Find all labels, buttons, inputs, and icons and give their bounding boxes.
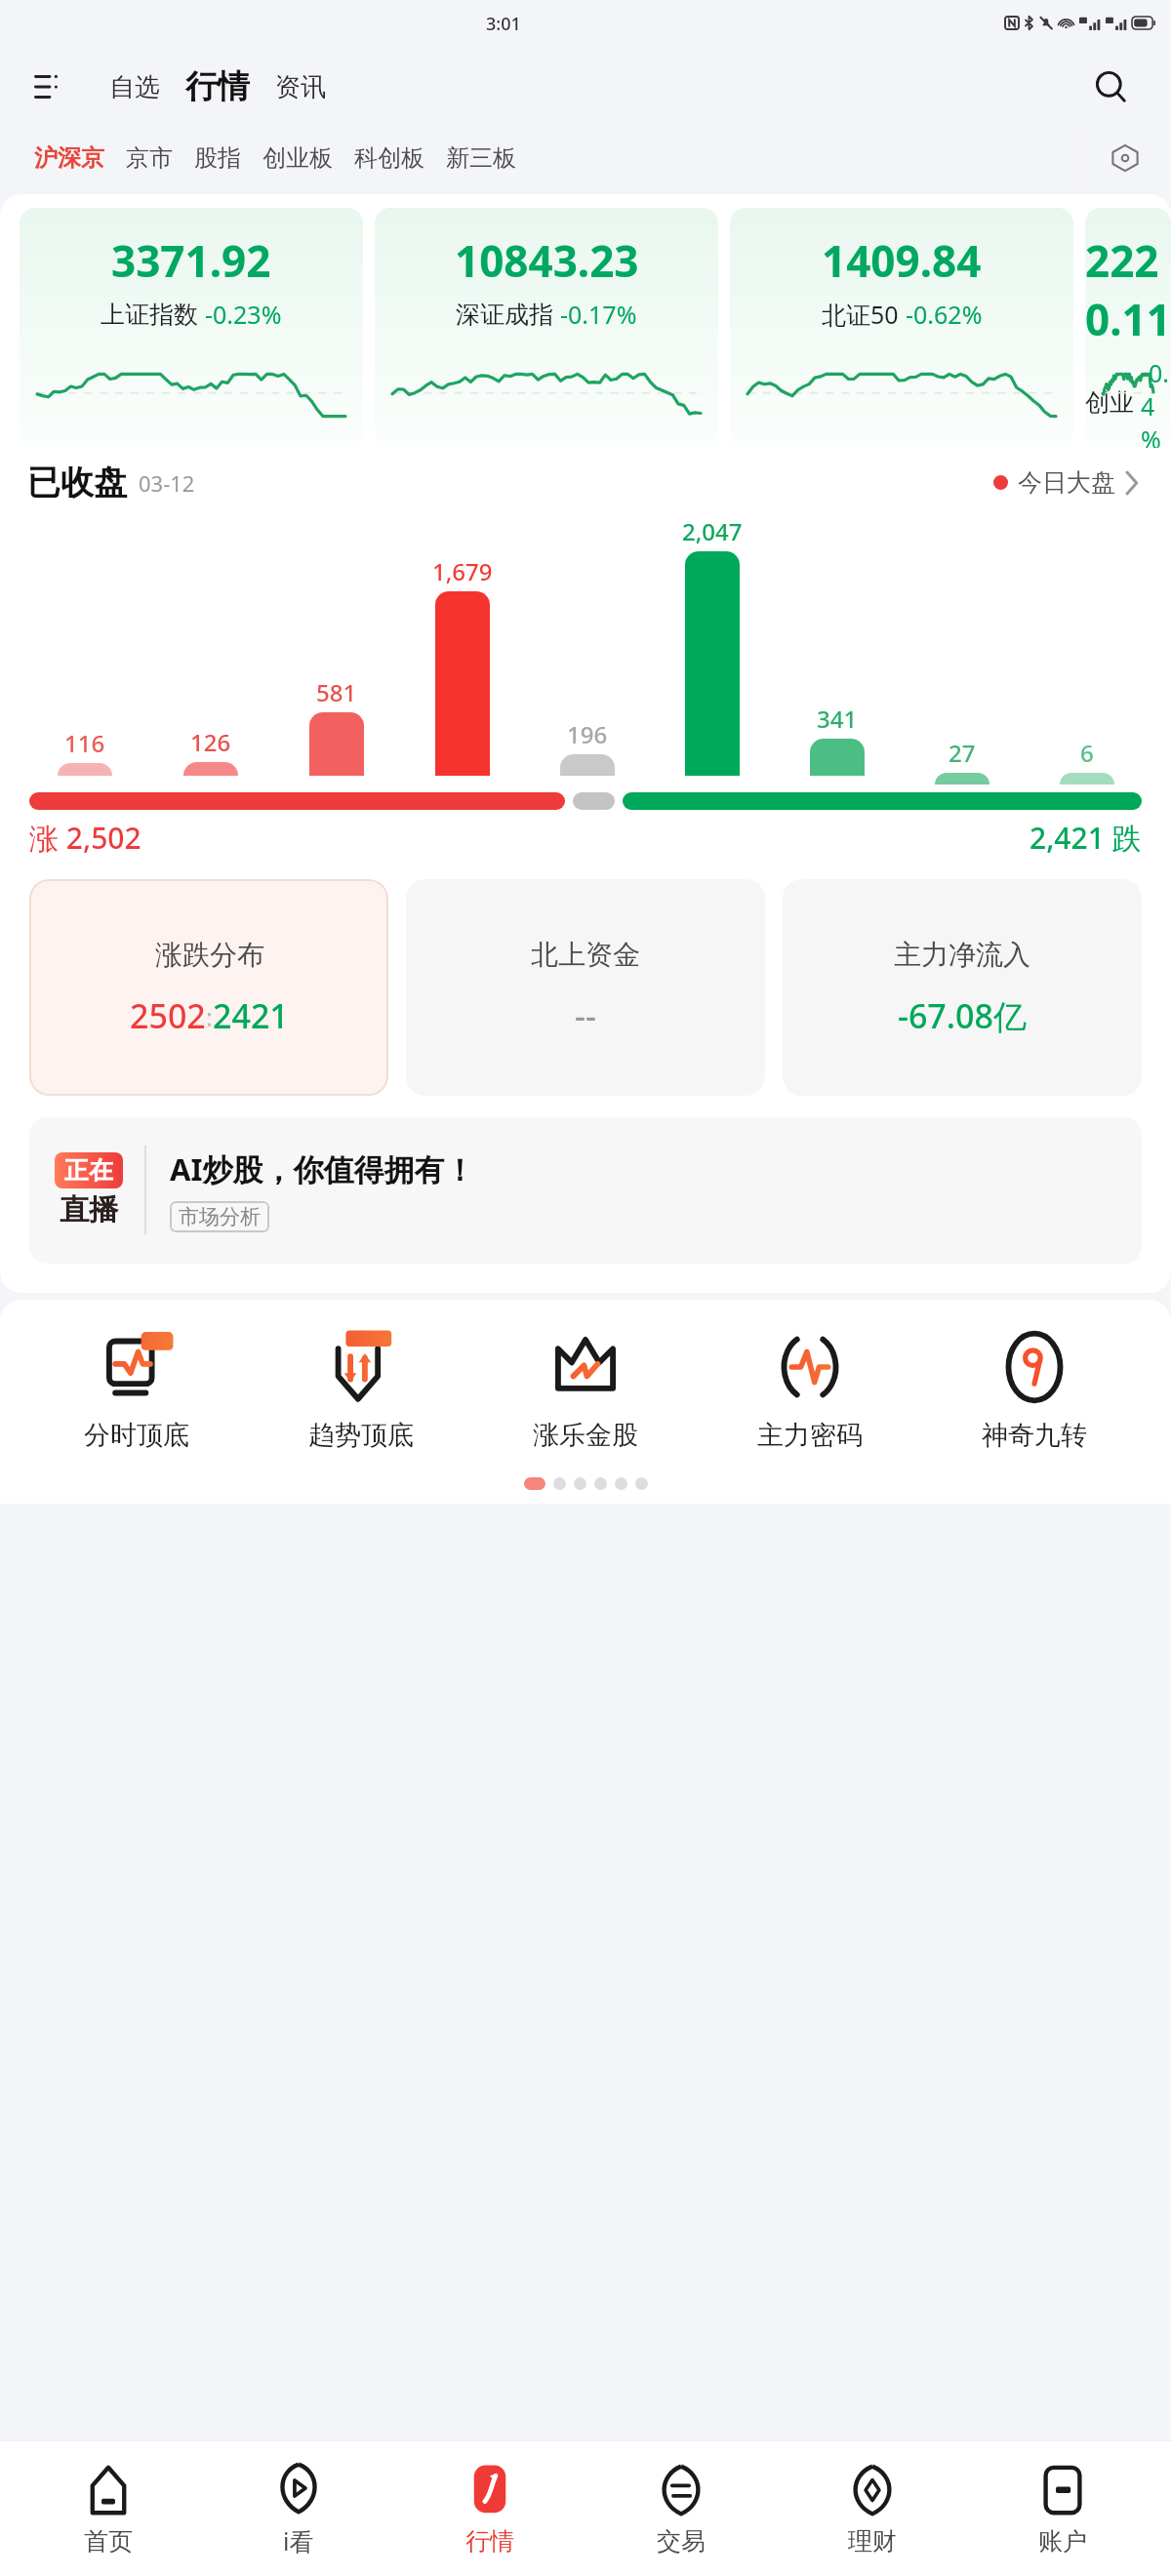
staticText: 趋势顶底 — [308, 1419, 414, 1452]
staticText: 10843.23 — [455, 231, 639, 290]
button[interactable]: 分时顶底 — [49, 1329, 224, 1452]
staticText: 6 — [1080, 737, 1094, 769]
button[interactable]: 神奇九转 — [947, 1329, 1122, 1452]
staticText: 2,421 跌 — [1030, 818, 1142, 858]
staticText: 341 — [817, 703, 858, 735]
staticText: 行情 — [465, 2526, 514, 2556]
staticText: 已收盘 — [27, 462, 127, 503]
staticText: 账户 — [1038, 2526, 1087, 2556]
staticText: 涨跌分布 — [155, 938, 264, 972]
staticText: 正在 — [64, 1155, 113, 1186]
staticText: 股指 — [194, 143, 241, 173]
staticText: 沪深京 — [34, 143, 104, 173]
button[interactable]: 116 — [21, 515, 147, 785]
staticText: 2421 — [213, 993, 289, 1038]
button[interactable]: 账户 — [980, 2441, 1146, 2576]
button[interactable]: 主力密码 — [722, 1329, 898, 1452]
staticText: 涨 2,502 — [29, 818, 141, 858]
staticText: 主力净流入 — [894, 938, 1030, 972]
button[interactable]: 理财 — [789, 2441, 955, 2576]
button[interactable]: 创业板 — [252, 136, 343, 181]
staticText: 116 — [64, 727, 105, 759]
button[interactable]: 6 — [1025, 515, 1150, 785]
button[interactable]: 行情 — [407, 2441, 573, 2576]
button[interactable]: 科创板 — [343, 136, 435, 181]
staticText: 新三板 — [446, 143, 516, 173]
staticText: 创业板 — [262, 143, 333, 173]
staticText: -- — [575, 993, 596, 1038]
button[interactable]: 资讯 — [267, 65, 334, 109]
button[interactable]: Customize tabs — [1103, 136, 1148, 181]
button[interactable]: 3371.92 — [20, 208, 363, 448]
staticText: AI炒股，你值得拥有！ — [170, 1148, 475, 1189]
staticText: 196 — [567, 718, 608, 750]
staticText: 行情 — [185, 66, 250, 107]
button[interactable]: 2,047 — [650, 515, 775, 785]
button[interactable]: 新三板 — [435, 136, 527, 181]
button[interactable]: 27 — [900, 515, 1025, 785]
button[interactable]: 股指 — [183, 136, 252, 181]
button[interactable]: 交易 — [598, 2441, 764, 2576]
button[interactable]: 196 — [525, 515, 650, 785]
button[interactable]: Menu — [25, 64, 70, 109]
staticText: 神奇九转 — [982, 1419, 1087, 1452]
staticText: 1,679 — [432, 555, 493, 587]
staticText: 分时顶底 — [84, 1419, 189, 1452]
staticText: 3:01 — [486, 12, 521, 36]
staticText: : — [206, 999, 213, 1033]
button[interactable]: 126 — [147, 515, 273, 785]
staticText: 北证50 — [822, 298, 899, 331]
button[interactable]: 10843.23 — [375, 208, 718, 448]
staticText: 北上资金 — [531, 938, 640, 972]
staticText: 自选 — [109, 71, 160, 103]
staticText: 今日大盘 — [1018, 467, 1115, 498]
button[interactable]: 沪深京 — [23, 136, 115, 181]
staticText: 市场分析 — [179, 1204, 261, 1229]
staticText: 交易 — [657, 2526, 706, 2556]
staticText: 资讯 — [275, 71, 326, 103]
button[interactable]: Search — [1085, 61, 1136, 112]
staticText: 126 — [190, 726, 231, 758]
staticText: -0.17% — [560, 298, 637, 331]
staticText: 理财 — [848, 2526, 897, 2556]
button[interactable]: 581 — [273, 515, 399, 785]
staticText: -0.4% — [1141, 356, 1171, 448]
button[interactable]: 趋势顶底 — [273, 1329, 449, 1452]
staticText: 1409.84 — [822, 231, 982, 290]
staticText: 涨乐金股 — [533, 1419, 638, 1452]
staticText: 2502 — [130, 993, 206, 1038]
staticText: 京市 — [126, 143, 173, 173]
button[interactable]: 341 — [775, 515, 900, 785]
button[interactable]: 主力净流入 — [783, 879, 1142, 1096]
button[interactable]: 今日大盘 — [988, 462, 1144, 503]
button[interactable]: i看 — [216, 2441, 382, 2576]
staticText: -67.08亿 — [898, 993, 1027, 1038]
staticText: i看 — [283, 2524, 314, 2557]
staticText: 创业 — [1085, 387, 1134, 418]
button[interactable]: 1409.84 — [730, 208, 1073, 448]
staticText: 上证指数 — [101, 300, 198, 330]
button[interactable]: 北上资金 — [406, 879, 765, 1096]
button[interactable]: 首页 — [25, 2441, 191, 2576]
button[interactable]: 涨跌分布 — [29, 879, 388, 1096]
staticText: 2220.11 — [1085, 231, 1171, 348]
button[interactable]: 正在 — [29, 1117, 1142, 1264]
staticText: 主力密码 — [757, 1419, 863, 1452]
staticText: -0.23% — [205, 298, 282, 331]
staticText: 2,047 — [682, 515, 743, 547]
button[interactable]: 涨乐金股 — [498, 1329, 673, 1452]
staticText: 科创板 — [354, 143, 424, 173]
staticText: -0.62% — [906, 298, 983, 331]
button[interactable]: 行情 — [178, 64, 258, 109]
button[interactable]: 1,679 — [399, 515, 525, 785]
button[interactable]: 京市 — [115, 136, 183, 181]
button[interactable]: 2220.11 — [1085, 208, 1171, 448]
button[interactable]: 自选 — [101, 65, 168, 109]
